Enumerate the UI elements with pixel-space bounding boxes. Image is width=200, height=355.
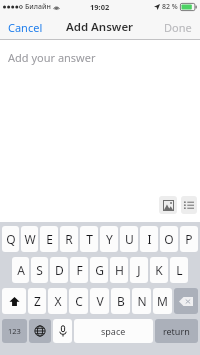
button[interactable]: Backspace bbox=[174, 288, 198, 314]
staticText: S bbox=[36, 262, 43, 278]
button[interactable]: R bbox=[60, 226, 78, 252]
staticText: Q bbox=[6, 231, 16, 247]
staticText: G bbox=[95, 262, 104, 278]
staticText: O bbox=[164, 231, 174, 247]
button[interactable]: C bbox=[69, 288, 88, 314]
button[interactable]: F bbox=[70, 257, 88, 283]
button[interactable]: Change keyboard language bbox=[29, 319, 51, 343]
button[interactable]: O bbox=[160, 226, 178, 252]
staticText: 123 bbox=[8, 326, 21, 336]
staticText: F bbox=[76, 262, 83, 278]
button[interactable]: E bbox=[40, 226, 58, 252]
staticText: K bbox=[155, 262, 163, 278]
staticText: T bbox=[86, 231, 93, 247]
button[interactable]: Insert image bbox=[159, 196, 177, 214]
button[interactable]: H bbox=[110, 257, 128, 283]
staticText: L bbox=[176, 262, 183, 278]
staticText: space bbox=[101, 325, 126, 337]
staticText: 19:02 bbox=[90, 2, 110, 12]
staticText: J bbox=[137, 262, 141, 278]
button[interactable]: K bbox=[150, 257, 168, 283]
staticText: I bbox=[147, 231, 152, 247]
button[interactable]: X bbox=[48, 288, 67, 314]
button[interactable]: T bbox=[80, 226, 98, 252]
button[interactable]: I bbox=[140, 226, 158, 252]
button[interactable]: Shift bbox=[2, 288, 26, 314]
button[interactable]: 123 bbox=[2, 319, 27, 343]
button[interactable]: Y bbox=[100, 226, 118, 252]
button[interactable]: Q bbox=[2, 226, 19, 252]
staticText: A bbox=[17, 262, 25, 278]
button[interactable]: V bbox=[90, 288, 109, 314]
staticText: M bbox=[157, 293, 168, 309]
staticText: Add Answer bbox=[66, 19, 134, 35]
staticText: return bbox=[163, 325, 190, 337]
button[interactable]: B bbox=[111, 288, 130, 314]
staticText: N bbox=[137, 293, 147, 309]
button[interactable]: L bbox=[170, 257, 188, 283]
staticText: D bbox=[55, 262, 64, 278]
button[interactable]: Bulleted list bbox=[181, 196, 197, 214]
button[interactable]: N bbox=[132, 288, 151, 314]
button[interactable]: U bbox=[120, 226, 138, 252]
staticText: E bbox=[46, 231, 53, 247]
staticText: U bbox=[125, 231, 134, 247]
button[interactable]: W bbox=[21, 226, 38, 252]
button[interactable]: return bbox=[155, 319, 198, 343]
staticText: Билайн bbox=[25, 2, 51, 12]
button[interactable]: A bbox=[12, 257, 29, 283]
staticText: Done bbox=[164, 20, 192, 35]
staticText: V bbox=[96, 293, 104, 309]
button[interactable]: Z bbox=[28, 288, 46, 314]
staticText: X bbox=[54, 293, 62, 309]
staticText: B bbox=[117, 293, 125, 309]
button[interactable]: J bbox=[130, 257, 148, 283]
button[interactable]: Dictation bbox=[53, 319, 72, 343]
button[interactable]: G bbox=[90, 257, 108, 283]
button[interactable]: P bbox=[180, 226, 198, 252]
staticText: 82 % bbox=[162, 2, 178, 12]
staticText: Z bbox=[34, 293, 41, 309]
button[interactable]: D bbox=[50, 257, 68, 283]
staticText: R bbox=[65, 231, 73, 247]
staticText: Y bbox=[106, 231, 113, 247]
staticText: H bbox=[115, 262, 124, 278]
staticText: C bbox=[75, 293, 83, 309]
button[interactable]: Cancel bbox=[0, 14, 51, 40]
staticText: P bbox=[185, 231, 193, 247]
button[interactable]: M bbox=[153, 288, 172, 314]
staticText: Add your answer bbox=[8, 50, 96, 65]
staticText: W bbox=[24, 231, 36, 247]
button[interactable]: S bbox=[31, 257, 48, 283]
button[interactable]: Done bbox=[156, 14, 200, 40]
button[interactable]: space bbox=[74, 319, 153, 343]
staticText: Cancel bbox=[8, 20, 43, 35]
